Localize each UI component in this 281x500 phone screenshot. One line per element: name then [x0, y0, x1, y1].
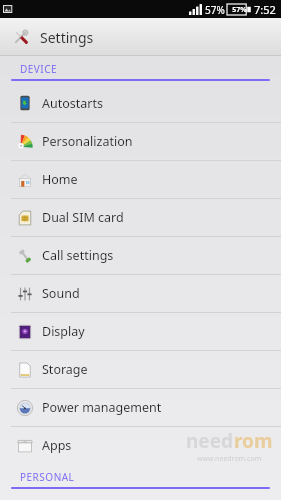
- staticText: Apps: [42, 437, 72, 454]
- staticText: rom: [234, 428, 273, 454]
- button[interactable]: Autostarts: [0, 84, 281, 122]
- staticText: Autostarts: [42, 95, 103, 112]
- button[interactable]: Apps: [0, 427, 281, 464]
- button[interactable]: Personalization: [0, 123, 281, 160]
- staticText: 57%: [232, 5, 247, 15]
- button[interactable]: Power management: [0, 389, 281, 426]
- button[interactable]: Storage: [0, 351, 281, 388]
- staticText: www.needrom.com: [197, 454, 262, 464]
- staticText: PERSONAL: [20, 470, 75, 484]
- staticText: Storage: [42, 361, 88, 378]
- button[interactable]: Home: [0, 161, 281, 198]
- button[interactable]: Display: [0, 313, 281, 350]
- button[interactable]: Sound: [0, 275, 281, 312]
- staticText: 57%: [205, 3, 225, 17]
- staticText: Home: [42, 171, 78, 188]
- staticText: Personalization: [42, 133, 133, 150]
- other: Settings: [11, 27, 31, 47]
- staticText: Power management: [42, 399, 162, 416]
- staticText: Dual SIM card: [42, 209, 124, 226]
- staticText: Settings: [40, 28, 94, 47]
- button[interactable]: Call settings: [0, 237, 281, 274]
- staticText: Call settings: [42, 247, 114, 264]
- staticText: Display: [42, 323, 85, 340]
- staticText: Sound: [42, 285, 80, 302]
- staticText: DEVICE: [20, 62, 58, 76]
- button[interactable]: Dual SIM card: [0, 199, 281, 236]
- staticText: 7:52: [254, 2, 276, 17]
- staticText: need: [186, 428, 234, 454]
